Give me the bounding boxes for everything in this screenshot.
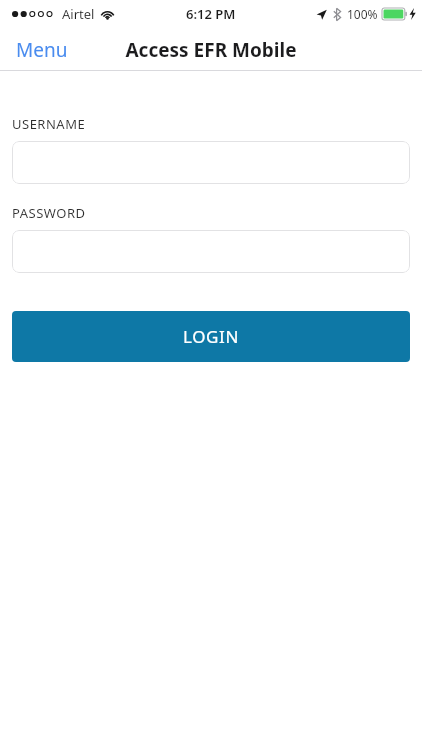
staticText: USERNAME <box>12 115 86 133</box>
staticText: Airtel <box>62 5 95 23</box>
staticText: Menu <box>16 37 68 63</box>
staticText: Access EFR Mobile <box>125 37 297 63</box>
staticText: LOGIN <box>183 325 239 348</box>
button[interactable]: Menu <box>0 31 80 69</box>
staticText: PASSWORD <box>12 204 86 222</box>
staticText: 100% <box>347 6 378 22</box>
staticText: 6:12 PM <box>186 5 236 23</box>
button[interactable] <box>12 230 410 273</box>
button[interactable] <box>12 141 410 184</box>
button[interactable]: LOGIN <box>12 311 410 362</box>
